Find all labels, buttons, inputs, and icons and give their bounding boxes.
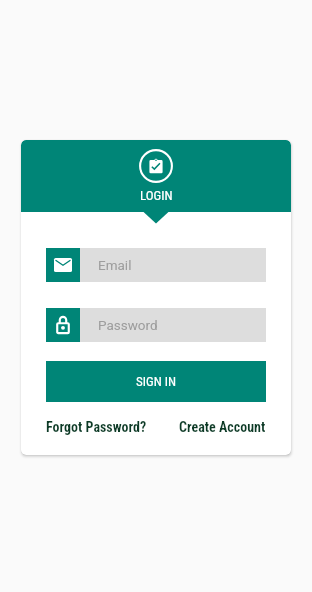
other: Email (46, 248, 80, 282)
button[interactable]: Password (46, 308, 266, 342)
button[interactable]: Forgot Password? (46, 408, 147, 446)
other: Password (46, 308, 80, 342)
button[interactable]: SIGN IN (46, 361, 266, 402)
staticText: Create Account (179, 419, 266, 435)
staticText: Password (98, 317, 158, 333)
staticText: Email (98, 257, 132, 273)
staticText: LOGIN (140, 188, 173, 203)
button[interactable]: Email (46, 248, 266, 282)
button[interactable]: Create Account (179, 408, 266, 446)
staticText: SIGN IN (136, 374, 177, 389)
staticText: Forgot Password? (46, 419, 147, 435)
